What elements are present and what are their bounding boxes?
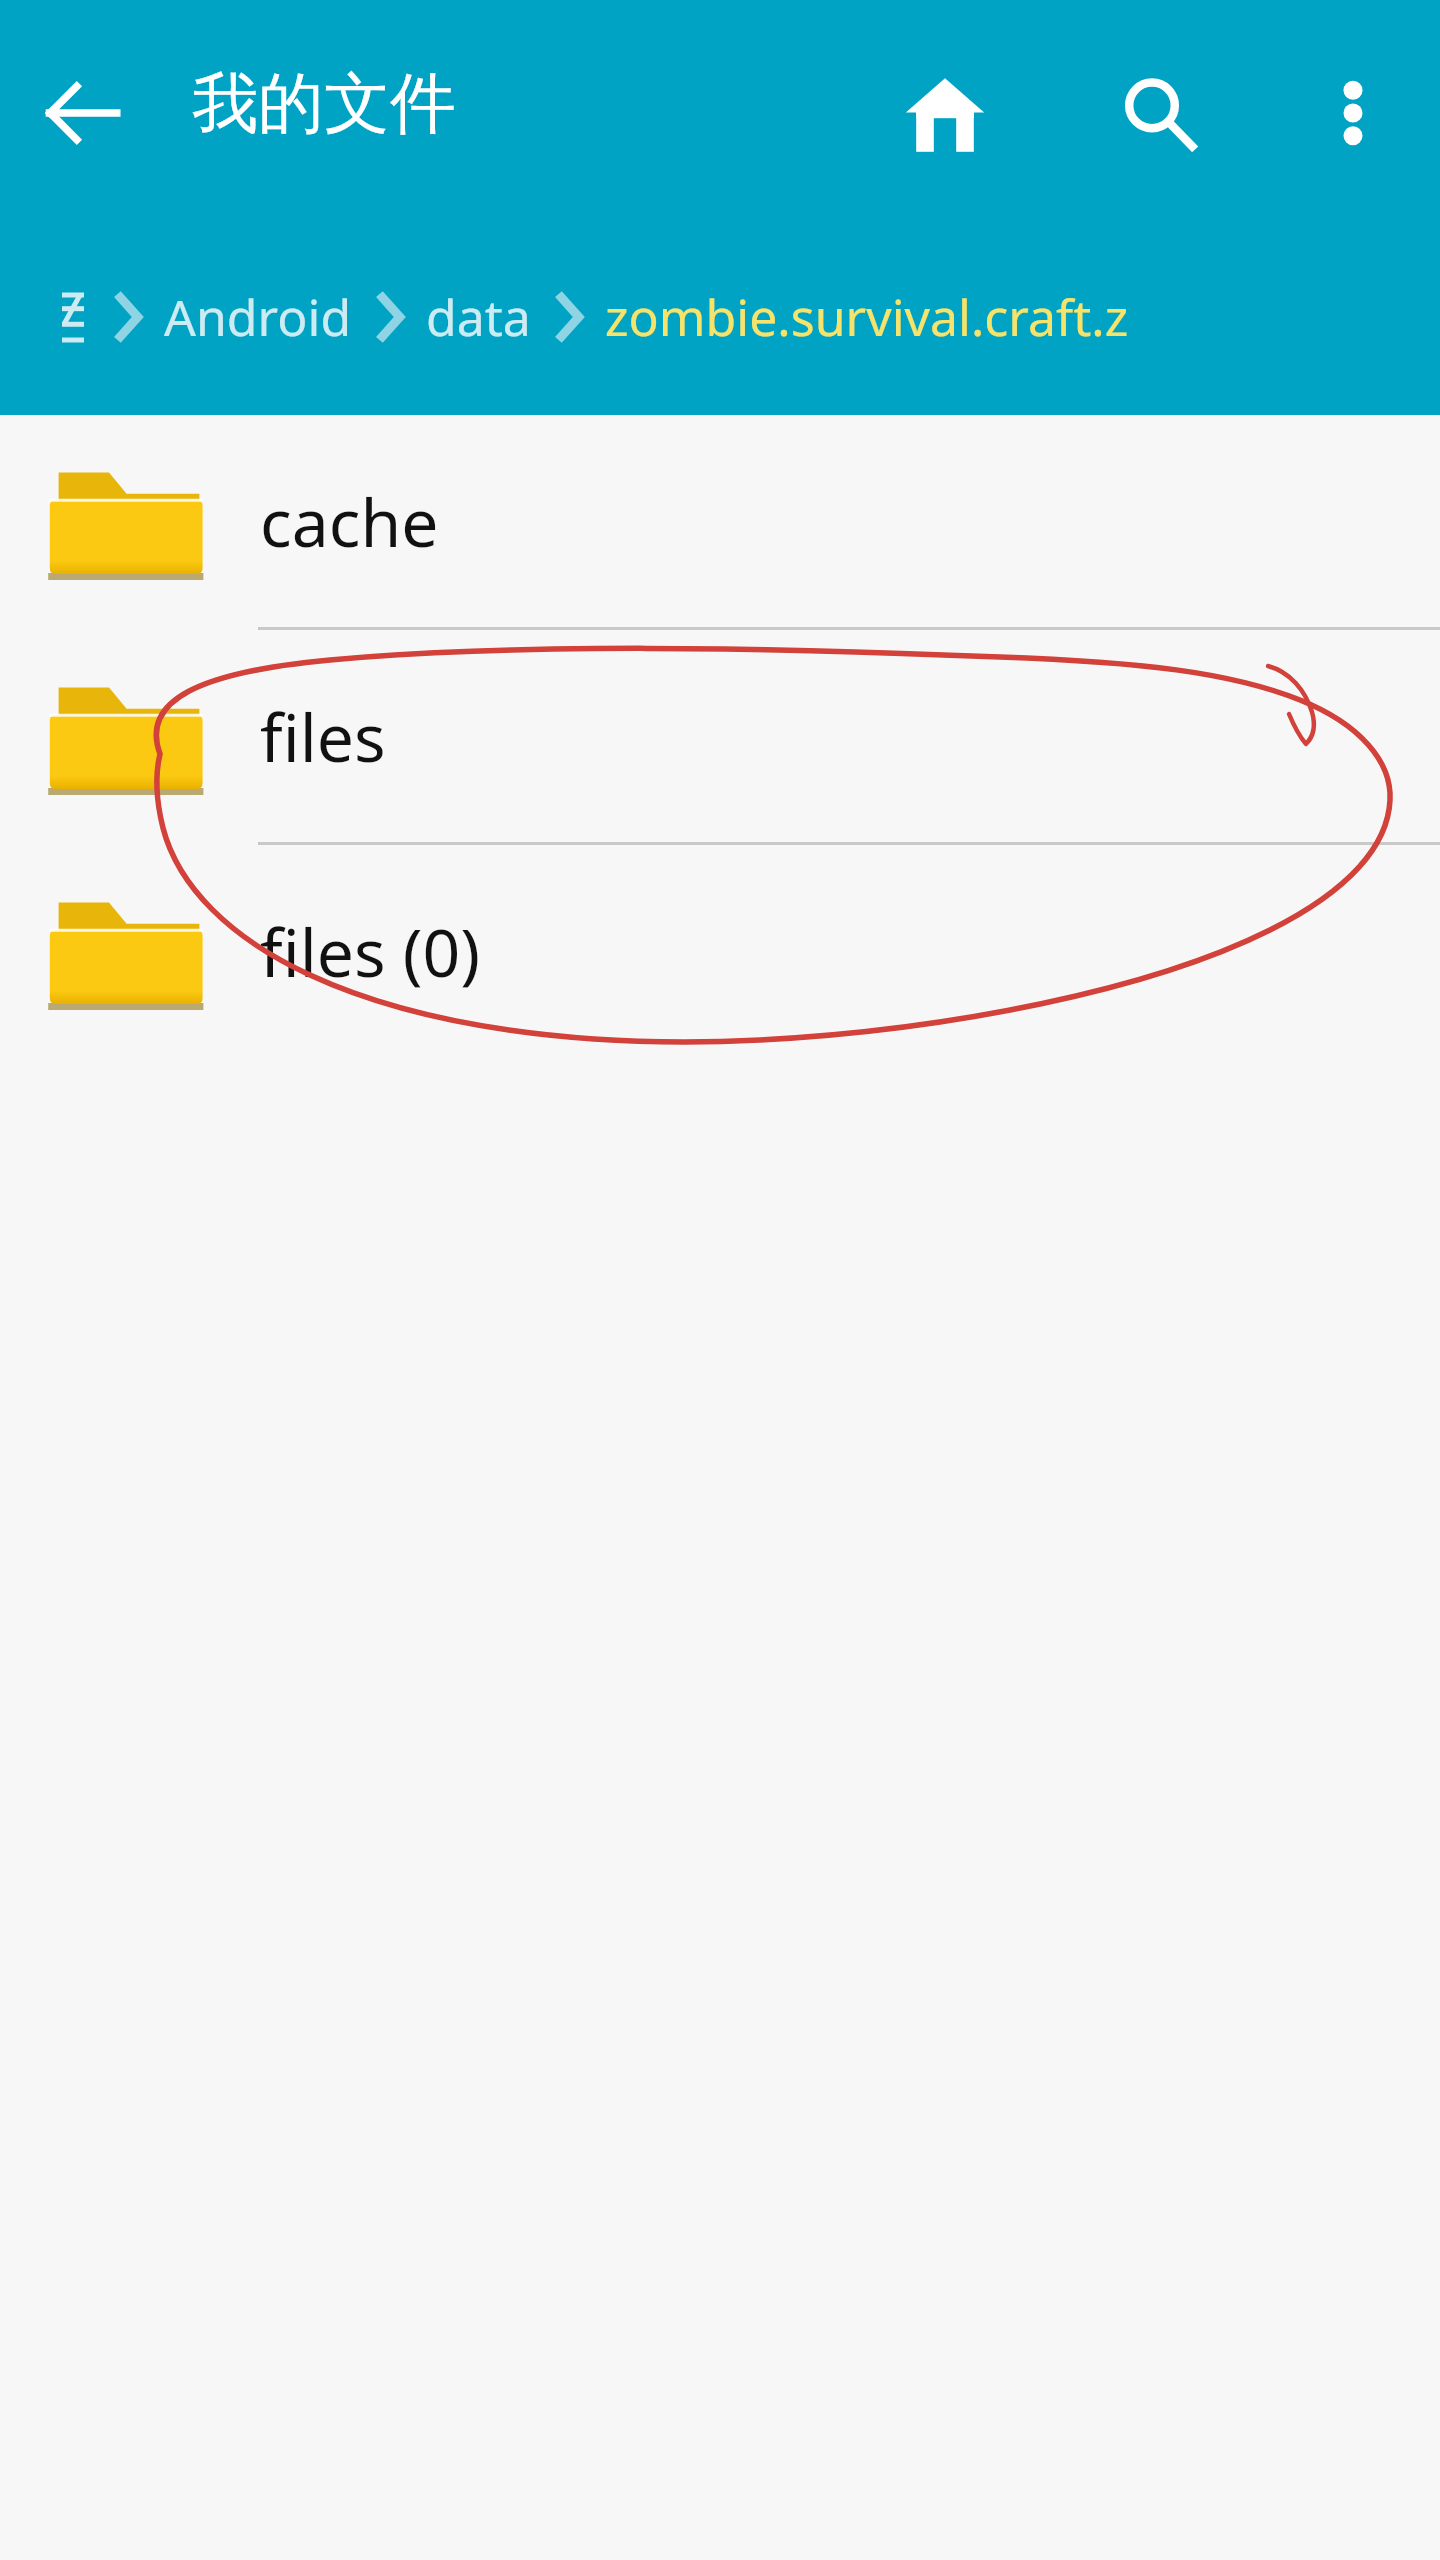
staticText: cache: [260, 476, 439, 566]
staticText: files (0): [260, 906, 481, 996]
button[interactable]: zombie.survival.craft.z: [605, 283, 1129, 351]
button[interactable]: data: [426, 283, 531, 351]
button[interactable]: Android: [164, 283, 352, 351]
staticText: files: [260, 691, 386, 781]
staticText: zombie.survival.craft.z: [605, 283, 1129, 351]
button[interactable]: files (0): [0, 845, 1440, 1057]
button[interactable]: files: [0, 630, 1440, 842]
staticText: 我的文件: [192, 62, 456, 145]
button[interactable]: Home: [880, 50, 1010, 180]
staticText: Android: [164, 283, 352, 351]
button[interactable]: cache: [0, 415, 1440, 627]
button[interactable]: Internal storage: [56, 287, 90, 347]
button[interactable]: More options: [1290, 50, 1415, 175]
button[interactable]: Back: [22, 53, 142, 173]
staticText: data: [426, 283, 531, 351]
button[interactable]: Search: [1095, 50, 1225, 180]
